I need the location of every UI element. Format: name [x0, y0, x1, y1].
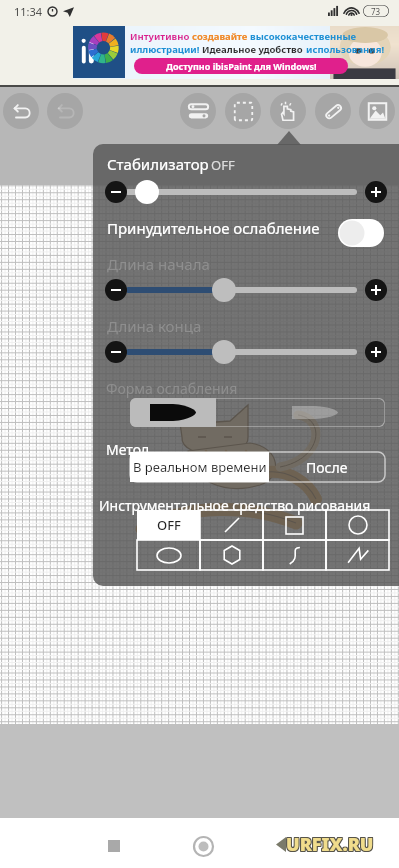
- staticText: 73: [371, 6, 381, 17]
- button[interactable]: [263, 540, 326, 570]
- button[interactable]: Brush: [315, 93, 351, 129]
- staticText: URFIX.RU: [286, 832, 374, 857]
- button[interactable]: [279, 398, 351, 427]
- staticText: URFIX.RU: [285, 833, 373, 858]
- staticText: OFF: [211, 156, 235, 174]
- button[interactable]: [137, 540, 200, 570]
- staticText: создавайте: [192, 30, 250, 43]
- staticText: использования!: [306, 43, 385, 56]
- staticText: OFF: [157, 516, 181, 534]
- staticText: После: [306, 458, 348, 477]
- staticText: Форма ослабления: [106, 379, 238, 398]
- button[interactable]: [326, 540, 389, 570]
- staticText: Доступно ibisPaint для Windows!: [166, 60, 317, 72]
- staticText: URFIX.RU: [285, 831, 373, 856]
- staticText: иллюстрации!: [130, 43, 202, 56]
- staticText: URFIX.RU: [286, 833, 374, 858]
- button[interactable]: Redo: [47, 93, 83, 129]
- button[interactable]: После: [269, 452, 385, 482]
- button[interactable]: [263, 510, 326, 540]
- button[interactable]: [326, 510, 389, 540]
- staticText: Инструментальное средство рисования: [99, 496, 371, 515]
- staticText: Длина конца: [107, 316, 202, 336]
- button[interactable]: Доступно ibisPaint для Windows!: [134, 58, 348, 74]
- staticText: Метод: [106, 440, 150, 459]
- button[interactable]: OFF: [137, 510, 200, 540]
- button[interactable]: [200, 510, 263, 540]
- button[interactable]: [130, 398, 216, 427]
- staticText: Принудительное ослабление: [107, 218, 320, 238]
- button[interactable]: Touch: [270, 93, 306, 129]
- staticText: URFIX.RU: [285, 832, 373, 857]
- button[interactable]: [200, 540, 263, 570]
- staticText: Интуитивно: [130, 30, 192, 43]
- staticText: высококачественные: [250, 30, 357, 43]
- staticText: Длина начала: [107, 254, 210, 274]
- button[interactable]: Undo: [3, 93, 39, 129]
- button[interactable]: [73, 26, 399, 79]
- staticText: URFIX.RU: [287, 833, 375, 858]
- staticText: URFIX.RU: [287, 832, 375, 857]
- staticText: URFIX.RU: [286, 831, 374, 856]
- staticText: Идеальное удобство: [202, 43, 306, 56]
- button[interactable]: Settings: [180, 93, 216, 129]
- button[interactable]: В реальном времени: [130, 452, 269, 482]
- button[interactable]: Layers: [359, 93, 395, 129]
- button[interactable]: Select: [225, 93, 261, 129]
- staticText: 11:34: [14, 4, 43, 19]
- staticText: Стабилизатор: [107, 154, 209, 174]
- button[interactable]: Home: [181, 824, 225, 868]
- button[interactable]: Toggle: [338, 219, 384, 247]
- button[interactable]: Recent apps: [92, 824, 136, 868]
- staticText: URFIX.RU: [287, 831, 375, 856]
- staticText: В реальном времени: [133, 458, 267, 476]
